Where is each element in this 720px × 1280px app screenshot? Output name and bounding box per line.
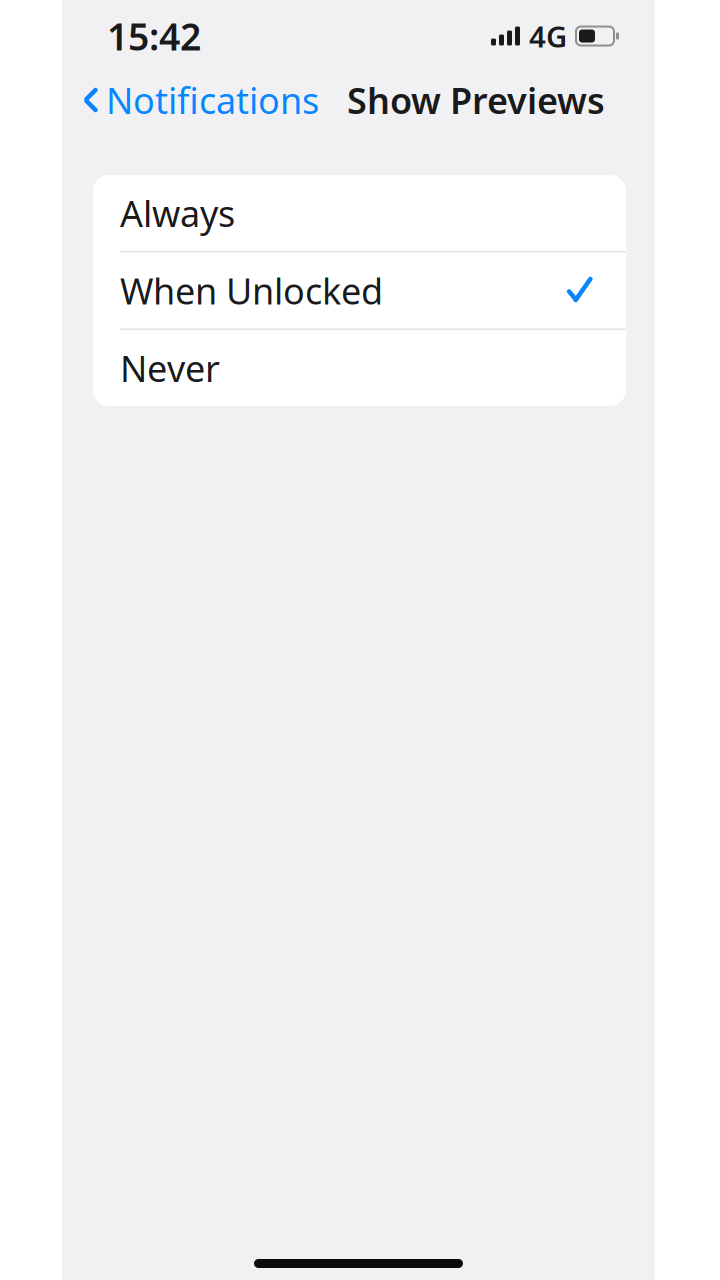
button[interactable]: Notifications [83, 68, 319, 132]
staticText: When Unlocked [120, 267, 383, 314]
staticText: Show Previews [347, 76, 605, 124]
staticText: 4G [529, 16, 567, 55]
button[interactable]: Always [93, 175, 626, 251]
staticText: Always [120, 189, 235, 237]
button[interactable]: When Unlocked [93, 252, 626, 328]
staticText: Never [120, 344, 220, 392]
staticText: 15:42 [107, 11, 201, 61]
button[interactable]: Never [93, 330, 626, 406]
staticText: Notifications [106, 76, 319, 124]
